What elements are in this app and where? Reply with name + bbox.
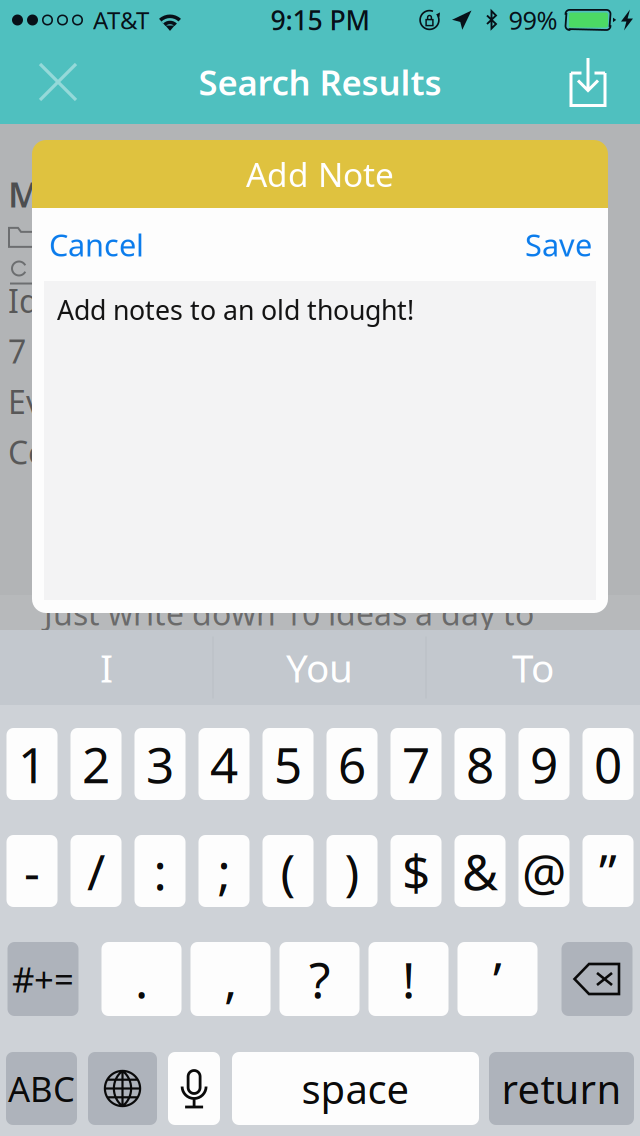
staticText: @ [522,838,566,904]
staticText: 7 of them are great [8,330,298,372]
staticText: Collect them all here [8,431,315,473]
button[interactable]: @ [518,835,569,907]
staticText: 9:15 PM [270,2,369,38]
button[interactable]: #+= [7,942,78,1016]
button[interactable]: Download [556,40,620,124]
button[interactable]: Switch keyboard [88,1052,157,1125]
staticText: ? [309,946,330,1012]
staticText: Just write down 10 ideas a day to [44,592,534,634]
staticText: . [135,946,148,1012]
staticText: / [87,838,105,904]
staticText: 1 [18,731,46,797]
staticText: Notes [45,256,114,289]
staticText: ABC [8,1065,75,1111]
staticText: Every single day works [8,380,345,423]
button[interactable]: 9 [518,728,569,800]
staticText: Work [45,218,107,252]
staticText: , [224,946,237,1012]
staticText: #+= [12,956,74,1002]
button[interactable]: Dictate [168,1052,220,1125]
button[interactable]: , [190,942,270,1016]
button[interactable]: ! [368,942,448,1016]
staticText: : [153,838,166,904]
button[interactable]: . [101,942,181,1016]
button[interactable]: 4 [198,728,249,800]
staticText: I [100,642,113,693]
button[interactable]: Close [26,40,90,124]
staticText: ) [344,838,359,904]
staticText: ” [599,838,617,904]
staticText: & [462,838,498,904]
button[interactable]: 3 [134,728,185,800]
button[interactable]: 0 [582,728,633,800]
staticText: 99% [508,3,557,37]
staticText: Save [525,224,592,265]
staticText: AT&T [93,4,149,36]
staticText: ; [217,838,230,904]
button[interactable]: 2 [70,728,121,800]
button[interactable]: / [70,835,121,907]
button[interactable]: Cancel [32,208,189,281]
button[interactable]: ’ [457,942,537,1016]
button[interactable]: space [232,1052,479,1125]
button[interactable]: ” [582,835,633,907]
button[interactable]: 5 [262,728,313,800]
staticText: 6 [338,731,366,797]
staticText: - [24,838,40,904]
staticText: 7 [402,731,430,797]
button[interactable]: 6 [326,728,377,800]
button[interactable]: To [426,630,639,705]
staticText: space [301,1062,409,1115]
staticText: 2 [82,731,110,797]
staticText: 4 [210,731,238,797]
button[interactable]: 7 [390,728,441,800]
staticText: Make a list of 10 ideas [8,171,379,217]
staticText: 8 [466,731,494,797]
staticText: You [286,642,353,693]
button[interactable]: ; [198,835,249,907]
staticText: Ideas for a new side project [8,279,419,322]
button[interactable]: ) [326,835,377,907]
staticText: ( [280,838,295,904]
staticText: Add notes to an old thought! [57,292,414,327]
button[interactable]: I [0,630,212,705]
button[interactable]: Delete [561,942,632,1016]
button[interactable]: Save [482,208,608,281]
staticText: 5 [274,731,302,797]
staticText: $ [402,838,430,904]
staticText: To [512,642,554,693]
button[interactable]: return [489,1052,634,1125]
staticText: 3 [146,731,174,797]
button[interactable]: : [134,835,185,907]
button[interactable]: ( [262,835,313,907]
staticText: ’ [493,946,502,1012]
staticText: Cancel [49,224,144,265]
button[interactable]: 8 [454,728,505,800]
button[interactable]: You [213,630,425,705]
staticText: Search Results [198,59,441,105]
button[interactable]: ? [279,942,359,1016]
staticText: ! [402,946,415,1012]
button[interactable]: - [6,835,57,907]
button[interactable]: $ [390,835,441,907]
staticText: 9 [530,731,558,797]
button[interactable]: ABC [6,1052,77,1125]
button[interactable]: 1 [6,728,57,800]
button[interactable]: & [454,835,505,907]
staticText: return [501,1062,621,1115]
staticText: 0 [594,731,622,797]
staticText: Add Note [246,152,394,196]
